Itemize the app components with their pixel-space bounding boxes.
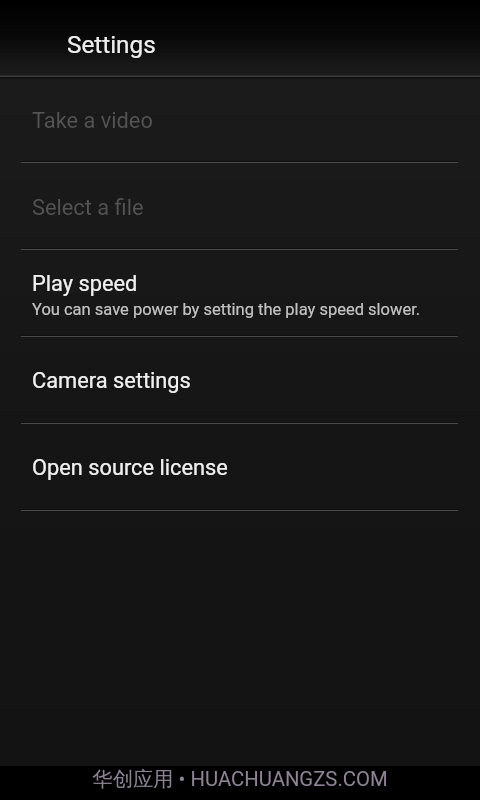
button[interactable]: Play speed [0, 249, 480, 336]
button[interactable]: Open source license [0, 423, 480, 510]
button[interactable]: Camera settings [0, 336, 480, 423]
button[interactable]: Select a file [0, 162, 480, 249]
staticText: Camera settings [32, 368, 191, 394]
staticText: 华创应用 • HUACHUANGZS.COM [92, 766, 388, 792]
staticText: Select a file [32, 195, 144, 221]
staticText: Play speed [32, 271, 138, 297]
staticText: Open source license [32, 455, 228, 481]
staticText: Settings [67, 30, 156, 58]
button[interactable]: Take a video [0, 78, 480, 162]
staticText: You can save power by setting the play s… [32, 300, 421, 319]
staticText: Take a video [32, 108, 153, 134]
